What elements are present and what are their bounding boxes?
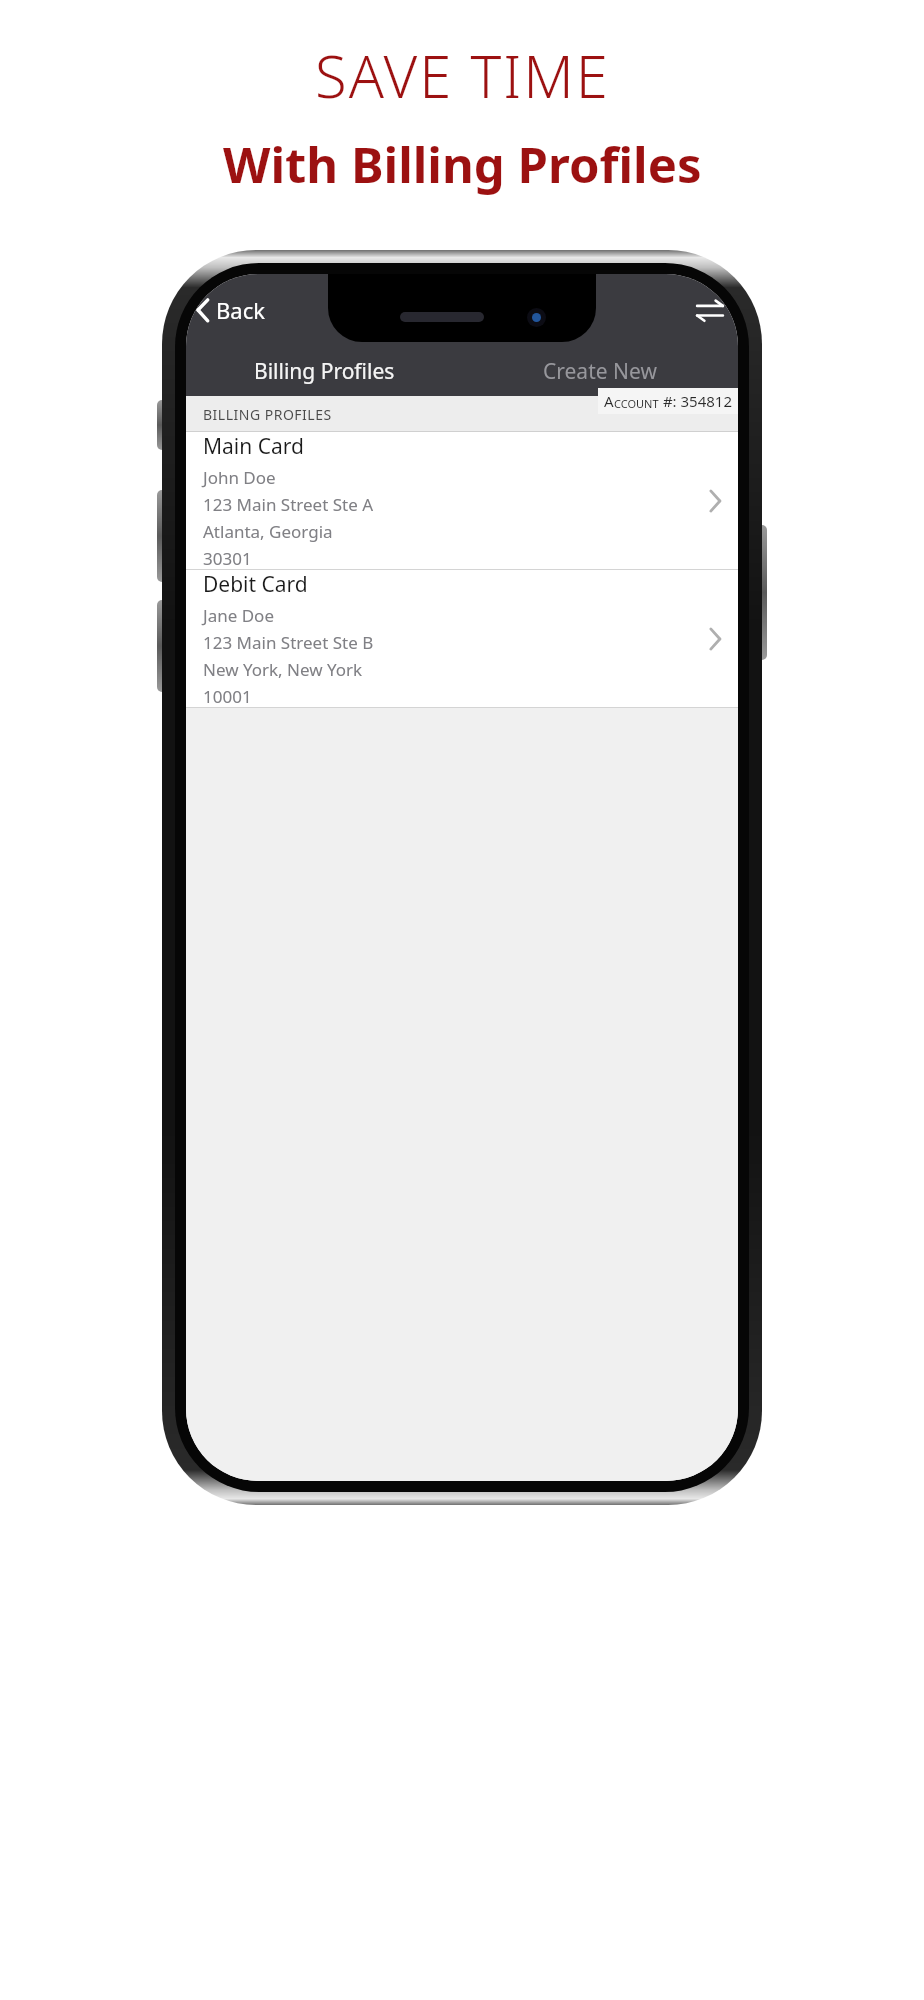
staticText: Billing Profiles xyxy=(254,357,395,386)
staticText: Back xyxy=(216,295,265,325)
staticText: John Doe xyxy=(203,466,276,489)
staticText: Jane Doe xyxy=(203,604,274,627)
staticText: A xyxy=(604,391,614,411)
staticText: Main Card xyxy=(203,432,304,461)
button[interactable]: Billing Profiles xyxy=(186,346,462,396)
staticText: 123 Main Street Ste A xyxy=(203,493,374,516)
button[interactable]: Switch account xyxy=(682,286,738,335)
staticText: 123 Main Street Ste B xyxy=(203,631,374,654)
staticText: Atlanta, Georgia xyxy=(203,520,333,543)
staticText: With Billing Profiles xyxy=(223,131,702,198)
button[interactable]: Back xyxy=(186,290,281,330)
staticText: BILLING PROFILES xyxy=(203,405,332,424)
staticText: CCOUNT xyxy=(614,396,659,411)
staticText: 30301 xyxy=(203,547,252,569)
staticText: SAVE TIME xyxy=(315,36,610,115)
staticText: 10001 xyxy=(203,685,252,707)
staticText: #: 354812 xyxy=(659,391,732,411)
button[interactable]: Debit Card xyxy=(186,570,738,707)
button[interactable]: Create New xyxy=(462,346,738,396)
button[interactable]: A xyxy=(598,388,738,414)
staticText: Debit Card xyxy=(203,570,308,599)
staticText: New York, New York xyxy=(203,658,363,681)
button[interactable]: Main Card xyxy=(186,432,738,569)
staticText: Create New xyxy=(543,357,657,386)
